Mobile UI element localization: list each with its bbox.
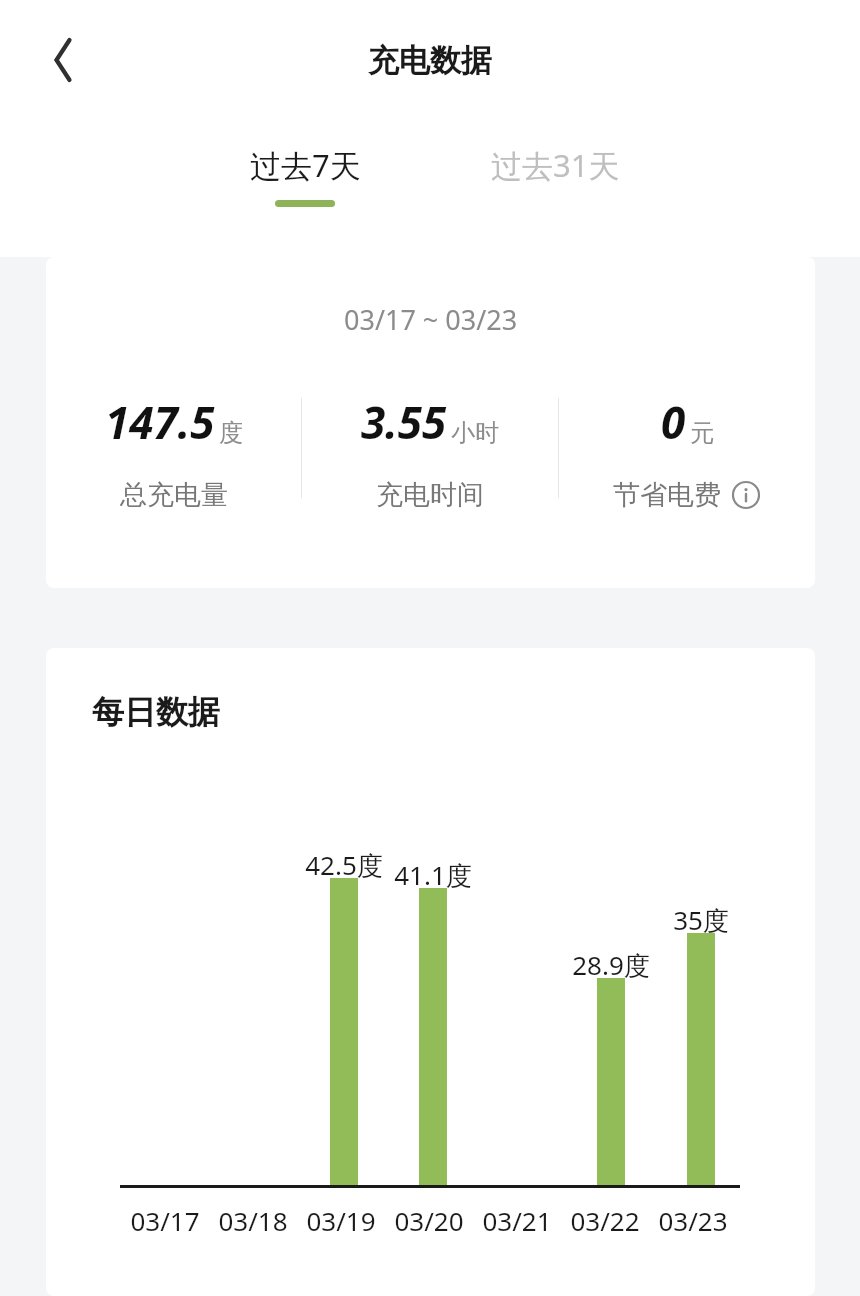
staticText: 元	[690, 418, 714, 448]
staticText: 03/19	[306, 1203, 376, 1238]
staticText: 充电时间	[376, 478, 484, 512]
staticText: 过去31天	[491, 144, 620, 186]
staticText: 03/23	[658, 1203, 728, 1238]
staticText: 03/21	[482, 1203, 552, 1238]
staticText: 总充电量	[120, 478, 228, 512]
staticText: 03/22	[570, 1203, 640, 1238]
staticText: 03/17 ~ 03/23	[344, 301, 518, 338]
staticText: 03/18	[218, 1203, 288, 1238]
staticText: 42.5度	[305, 847, 383, 883]
staticText: 充电数据	[368, 41, 492, 80]
staticText: 41.1度	[394, 857, 472, 893]
staticText: 节省电费	[613, 478, 721, 512]
staticText: 28.9度	[572, 947, 650, 983]
staticText: 35度	[673, 902, 729, 938]
button[interactable]: Info	[731, 480, 761, 510]
staticText: 0	[661, 392, 686, 452]
staticText: 03/20	[394, 1203, 464, 1238]
button[interactable]: 过去7天	[180, 138, 430, 213]
button[interactable]: Back	[30, 27, 96, 93]
staticText: 每日数据	[92, 692, 220, 732]
staticText: 度	[219, 418, 243, 448]
button[interactable]: 过去31天	[430, 138, 680, 192]
staticText: 03/17	[130, 1203, 200, 1238]
staticText: 147.5	[105, 392, 215, 452]
button[interactable]: 03/17 ~ 03/23	[46, 257, 815, 588]
staticText: 过去7天	[250, 144, 361, 186]
staticText: 3.55	[361, 392, 447, 452]
staticText: 小时	[451, 418, 499, 448]
